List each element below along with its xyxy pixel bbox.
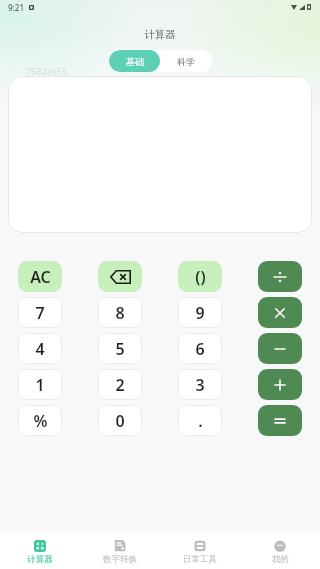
button[interactable]: 5 [98,333,142,364]
button[interactable]: 日常工具 [160,531,240,569]
staticText: 科学 [177,56,195,67]
button[interactable]: Backspace [98,261,142,292]
button[interactable]: 我的 [240,531,320,569]
button[interactable]: 0 [98,405,142,436]
staticText: 1 [35,374,45,396]
button[interactable]: 3 [178,369,222,400]
staticText: 7 [35,302,45,324]
staticText: 3 [195,374,205,396]
staticText: 2 [115,374,125,396]
staticText: 9:21 [8,2,24,13]
button[interactable]: 2 [98,369,142,400]
staticText: 计算器 [27,554,53,565]
button[interactable]: 8 [98,297,142,328]
button[interactable]: 1 [18,369,62,400]
button[interactable]: 6 [178,333,222,364]
button[interactable]: 9 [178,297,222,328]
button[interactable]: AC [18,261,62,292]
staticText: 6 [195,338,205,360]
button[interactable]: () [178,261,222,292]
staticText: 数字转换 [103,554,137,565]
button[interactable]: 4 [18,333,62,364]
staticText: 基础 [126,56,144,67]
button[interactable]: 基础 [109,50,160,72]
button[interactable]: 7 [18,297,62,328]
button[interactable]: Add [258,369,302,400]
staticText: 8 [115,302,125,324]
staticText: 5 [115,338,125,360]
staticText: 日常工具 [183,554,217,565]
staticText: 9 [195,302,205,324]
staticText: 7582e655 [26,65,68,77]
staticText: AC [30,266,51,288]
button[interactable]: Subtract [258,333,302,364]
button[interactable]: 数字转换 [80,531,160,569]
button[interactable]: 科学 [160,50,212,72]
button[interactable]: Divide [258,261,302,292]
staticText: 0 [115,410,125,432]
staticText: 我的 [272,554,289,565]
staticText: () [195,266,206,288]
staticText: % [33,410,48,432]
button[interactable]: % [18,405,62,436]
button[interactable]: Multiply [258,297,302,328]
staticText: . [198,410,203,432]
staticText: 4 [35,338,45,360]
button[interactable]: 计算器 [0,531,80,569]
button[interactable]: . [178,405,222,436]
button[interactable]: Equals [258,405,302,436]
staticText: 计算器 [144,28,176,41]
